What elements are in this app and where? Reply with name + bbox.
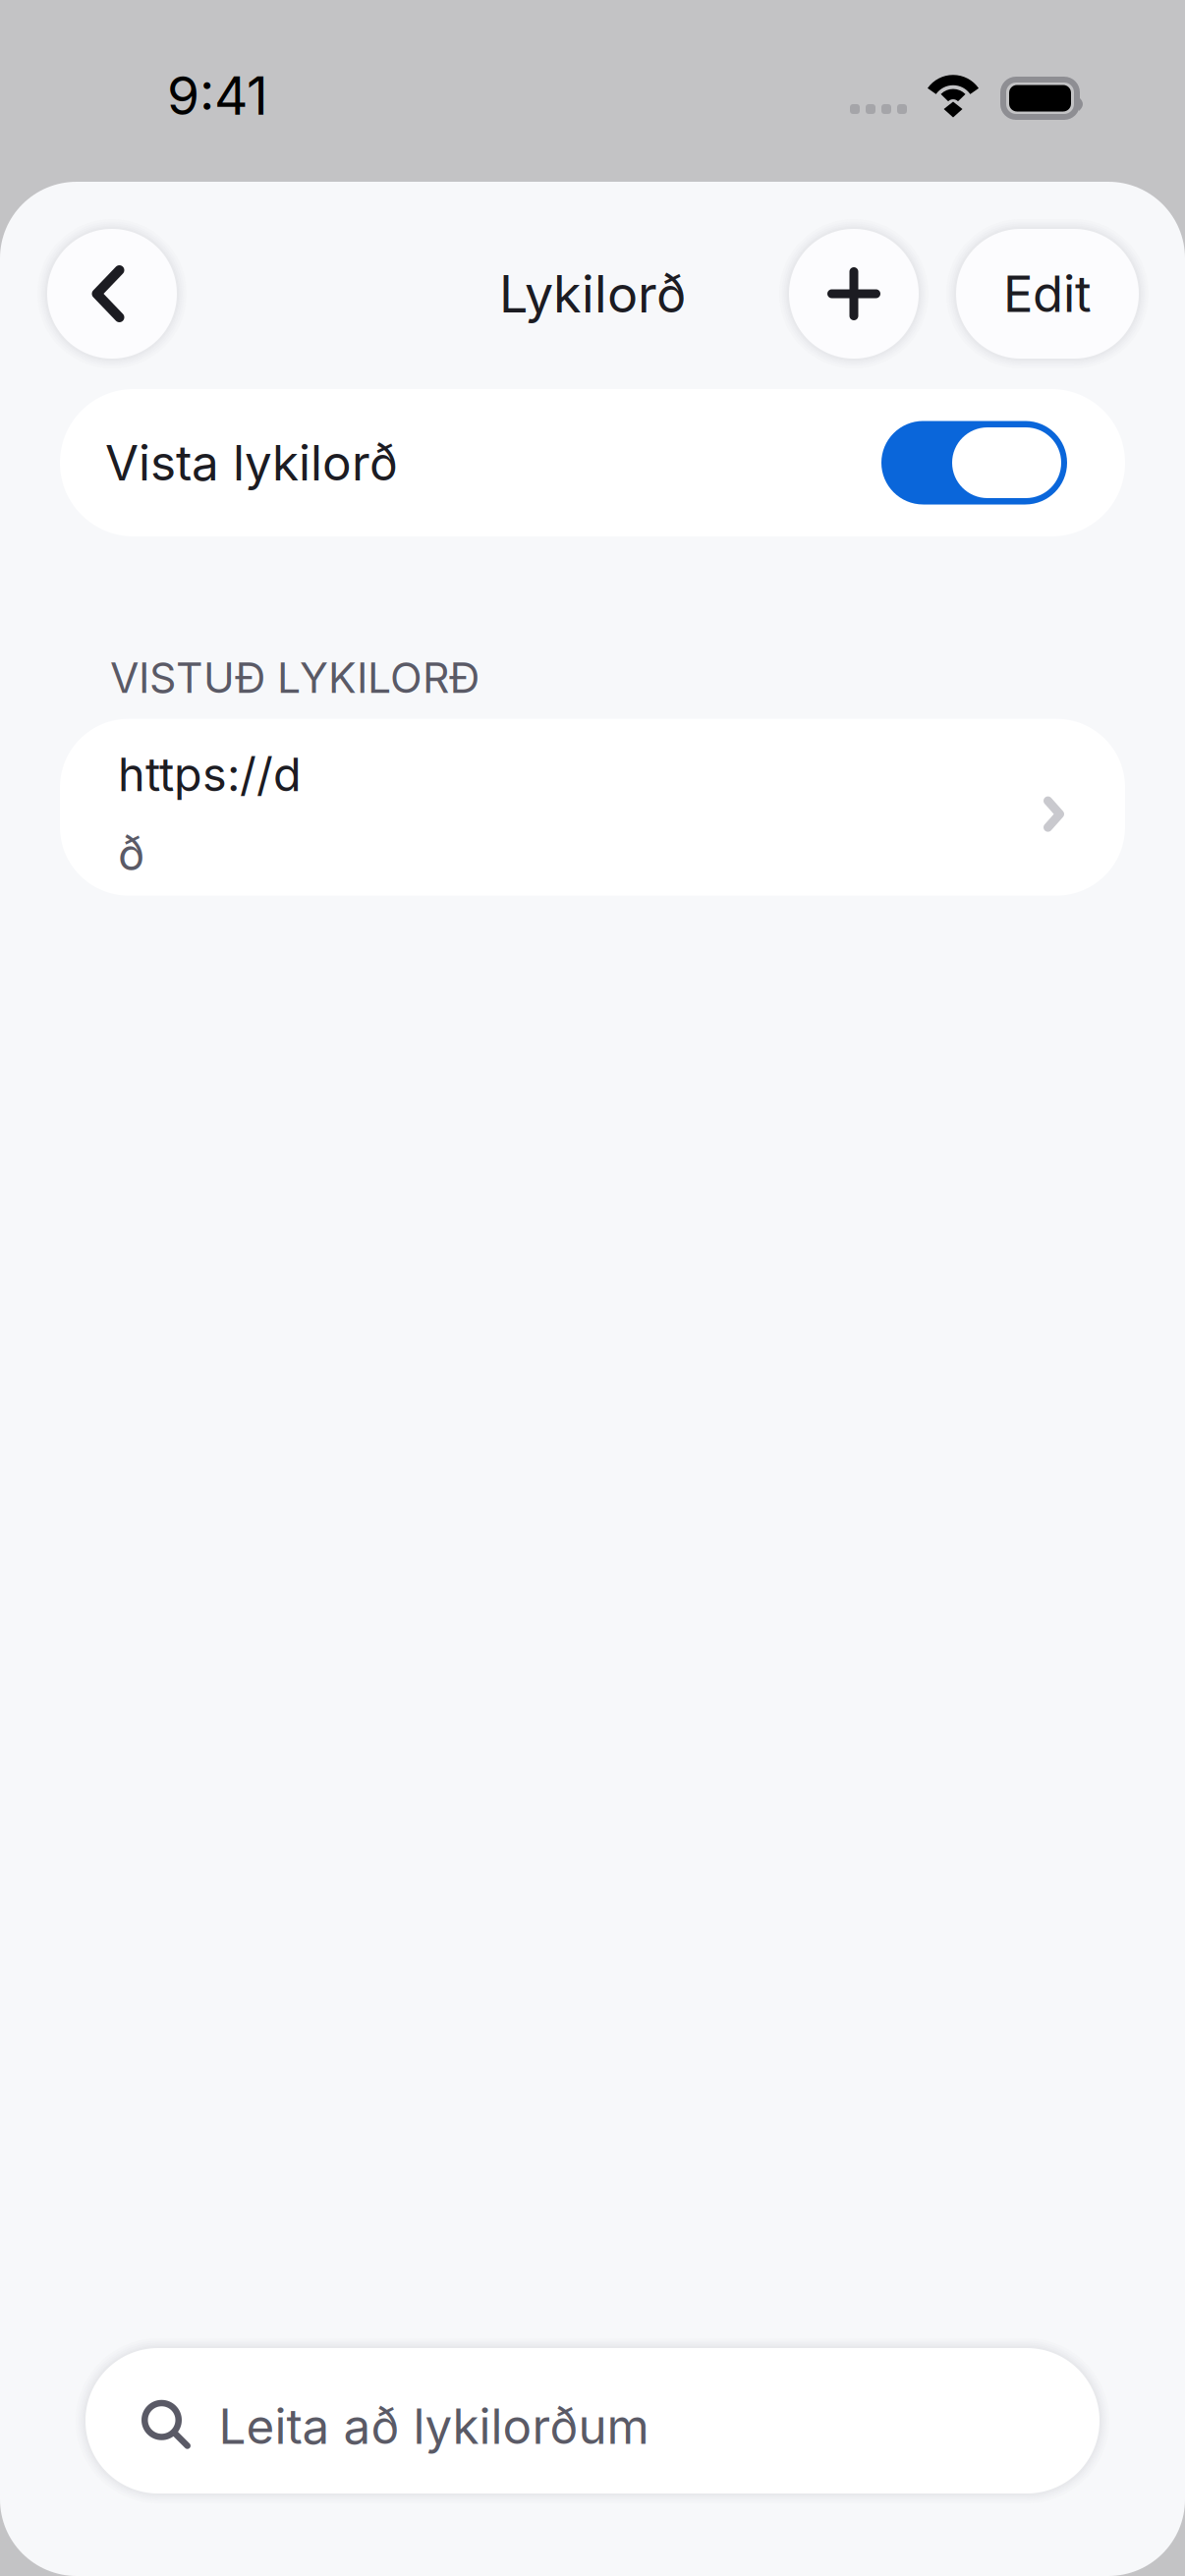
staticText: https://d: [118, 747, 302, 802]
button[interactable]: Leita að lykilorðum: [0, 2348, 1185, 2493]
staticText: Vista lykilorð: [105, 433, 398, 492]
staticText: Edit: [1003, 264, 1092, 324]
button[interactable]: Back: [47, 229, 177, 359]
staticText: Leita að lykilorðum: [219, 2397, 649, 2456]
staticText: ð: [118, 826, 144, 881]
staticText: 9:41: [167, 64, 268, 127]
button[interactable]: https://d: [0, 719, 1185, 896]
staticText: Lykilorð: [499, 263, 686, 325]
button[interactable]: Add password: [789, 229, 919, 359]
staticText: VISTUÐ LYKILORÐ: [110, 652, 480, 703]
button[interactable]: Edit: [956, 229, 1139, 359]
